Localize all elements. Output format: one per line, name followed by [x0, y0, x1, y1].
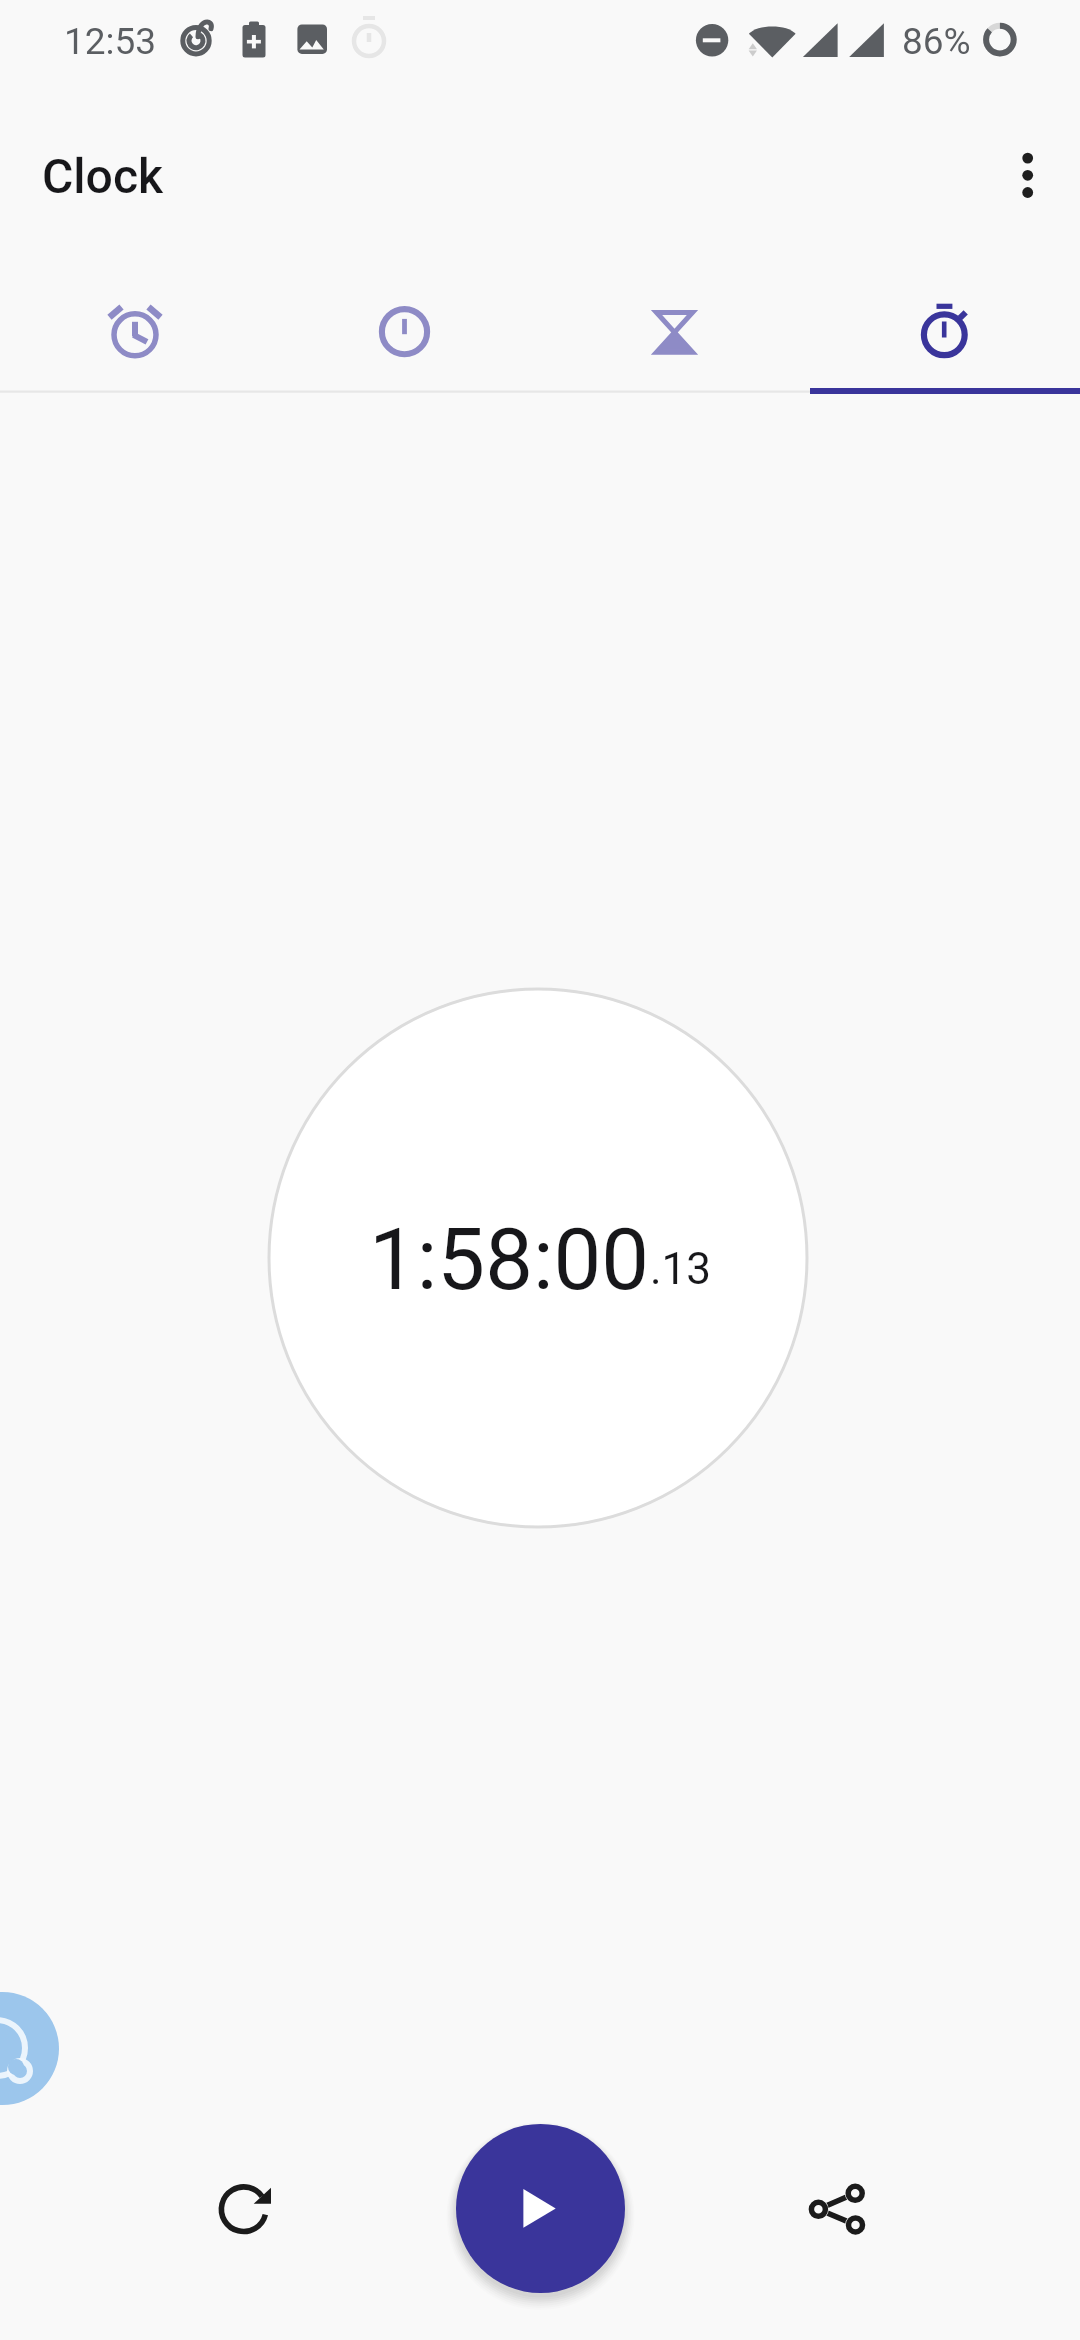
staticText: Clock: [42, 148, 164, 204]
button[interactable]: Reset: [185, 2149, 305, 2269]
button[interactable]: Start: [456, 2124, 625, 2293]
button[interactable]: Share: [776, 2149, 896, 2269]
button[interactable]: Stopwatch: [810, 270, 1080, 390]
button[interactable]: World clock: [270, 270, 540, 390]
staticText: 12:53: [64, 20, 157, 63]
staticText: 86%: [902, 20, 971, 63]
staticText: 1:58:00: [369, 1210, 650, 1310]
staticText: .13: [650, 1243, 712, 1295]
button[interactable]: Timer: [540, 270, 810, 390]
button[interactable]: Assistant bubble: [0, 1992, 59, 2105]
button[interactable]: Alarm: [0, 270, 270, 390]
